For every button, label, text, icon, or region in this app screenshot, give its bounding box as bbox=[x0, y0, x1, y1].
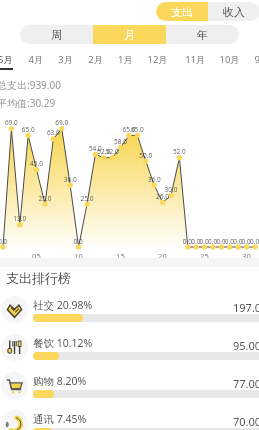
staticText: 支出 bbox=[171, 5, 193, 19]
staticText: 支出排行榜 bbox=[6, 270, 71, 286]
staticText: 平均值:30.29 bbox=[0, 96, 56, 110]
button[interactable]: 餐饮 10.12% bbox=[0, 334, 259, 372]
staticText: 70.00 bbox=[233, 414, 259, 429]
staticText: 95.00 bbox=[233, 338, 259, 353]
button[interactable]: 支出 bbox=[156, 2, 208, 21]
staticText: 77.00 bbox=[233, 376, 259, 391]
staticText: 社交 20.98% bbox=[33, 298, 93, 312]
staticText: 月 bbox=[124, 28, 135, 42]
button[interactable]: 月 bbox=[93, 25, 166, 44]
staticText: 购物 8.20% bbox=[33, 374, 87, 388]
staticText: 通讯 7.45% bbox=[33, 412, 87, 426]
button[interactable]: 社交 20.98% bbox=[0, 296, 259, 334]
button[interactable]: 收入 bbox=[208, 2, 259, 21]
button[interactable]: 购物 8.20% bbox=[0, 372, 259, 410]
staticText: 周 bbox=[51, 28, 62, 42]
staticText: 收入 bbox=[223, 5, 245, 19]
staticText: 197.00 bbox=[233, 300, 259, 315]
button[interactable]: 通讯 7.45% bbox=[0, 410, 259, 430]
button[interactable]: 周 bbox=[20, 25, 93, 44]
staticText: 总支出:939.00 bbox=[0, 78, 61, 92]
staticText: 餐饮 10.12% bbox=[33, 336, 93, 350]
staticText: 年 bbox=[197, 28, 208, 42]
button[interactable]: 年 bbox=[166, 25, 239, 44]
